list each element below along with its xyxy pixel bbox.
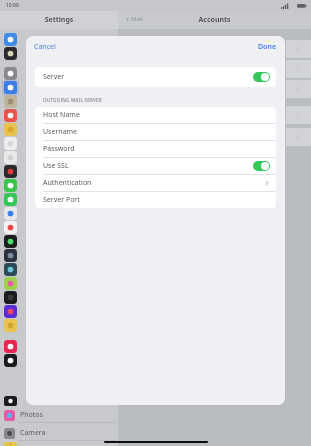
staticText: Server (43, 72, 65, 82)
button[interactable]: App icon (4, 249, 17, 262)
staticText: Use SSL (43, 161, 69, 171)
button[interactable]: Photos (2, 407, 118, 423)
button[interactable]: App icon (4, 151, 17, 164)
button[interactable]: App icon (4, 179, 17, 192)
button[interactable]: App icon (4, 319, 17, 332)
button[interactable]: App icon (4, 207, 17, 220)
button[interactable]: App icon (4, 340, 17, 353)
staticText: 10:00 (6, 2, 19, 9)
button[interactable]: App icon (4, 277, 17, 290)
button[interactable]: App icon (4, 137, 17, 150)
staticText: Server Port (43, 195, 80, 205)
staticText: Done (258, 42, 277, 52)
button[interactable]: Toggle (253, 161, 270, 171)
button[interactable]: App icon (4, 354, 17, 367)
staticText: Accounts (118, 15, 311, 25)
button[interactable]: Camera (2, 425, 118, 441)
button[interactable]: App icon (4, 67, 17, 80)
button[interactable]: Authentication (35, 175, 276, 192)
button[interactable]: App icon (4, 263, 17, 276)
button[interactable]: Done (254, 39, 281, 55)
staticText: Password (43, 144, 75, 154)
button[interactable]: Toggle (253, 72, 270, 82)
button[interactable]: App icon (4, 33, 17, 46)
button[interactable]: Use SSL (35, 158, 276, 175)
button[interactable]: App icon (4, 235, 17, 248)
button[interactable]: App icon (4, 221, 17, 234)
button[interactable]: App icon (4, 47, 17, 60)
staticText: Camera (20, 428, 46, 438)
button[interactable]: App icon (4, 305, 17, 318)
button[interactable]: App icon (4, 193, 17, 206)
button[interactable]: App icon (4, 291, 17, 304)
staticText: Settings (0, 15, 118, 25)
staticText: Host Name (43, 110, 80, 120)
staticText: Mail (131, 15, 143, 23)
button[interactable]: Cancel (30, 39, 60, 55)
button[interactable]: App icon (4, 95, 17, 108)
button[interactable]: Password (35, 141, 276, 158)
button[interactable]: Mail (124, 14, 144, 24)
staticText: OUTGOING MAIL SERVER (43, 97, 102, 103)
button[interactable]: Host Name (35, 107, 276, 124)
staticText: Username (43, 127, 78, 137)
button[interactable]: Server Port (35, 192, 276, 208)
button[interactable]: App icon (4, 165, 17, 178)
button[interactable]: App icon (4, 123, 17, 136)
button[interactable]: Server (35, 67, 276, 87)
staticText: Cancel (34, 42, 56, 52)
staticText: Authentication (43, 178, 92, 188)
button[interactable]: Username (35, 124, 276, 141)
button[interactable]: App icon (4, 81, 17, 94)
staticText: Photos (20, 410, 43, 420)
button[interactable]: App icon (4, 109, 17, 122)
